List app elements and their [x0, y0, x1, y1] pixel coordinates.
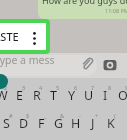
staticText: E [16, 87, 23, 104]
button[interactable]: Y [63, 81, 80, 105]
staticText: K [107, 115, 115, 132]
button[interactable]: S [0, 109, 15, 133]
staticText: ( [114, 112, 116, 119]
staticText: H [71, 115, 81, 132]
button[interactable]: PASTE [0, 23, 46, 50]
staticText: + [95, 112, 99, 119]
staticText: D [19, 115, 29, 132]
button[interactable]: R [28, 81, 45, 105]
button[interactable]: F [33, 109, 50, 133]
button[interactable]: W [0, 81, 10, 105]
staticText: J [91, 115, 95, 132]
staticText: & [60, 112, 65, 119]
staticText: W [0, 87, 8, 104]
staticText: I [103, 87, 108, 104]
staticText: 2 [4, 84, 8, 91]
button[interactable]: K [102, 109, 119, 133]
staticText: 11:08 PM [105, 7, 127, 14]
button[interactable]: H [67, 109, 84, 133]
staticText: How are you guys doing [42, 0, 127, 6]
staticText: _ [44, 112, 47, 119]
staticText: 3 [22, 84, 26, 91]
button[interactable]: How are you guys doing [38, 0, 127, 19]
staticText: U [84, 87, 94, 104]
staticText: Y [68, 87, 76, 104]
button[interactable]: Attach [80, 57, 94, 71]
button[interactable]: I [97, 81, 114, 105]
staticText: G [54, 115, 64, 132]
button[interactable]: U [80, 81, 97, 105]
staticText: 5 [56, 84, 60, 91]
button[interactable]: D [15, 109, 32, 133]
button[interactable] [0, 55, 97, 76]
staticText: S [3, 115, 10, 132]
button[interactable]: T [45, 81, 62, 105]
staticText: R [33, 87, 41, 104]
staticText: 4 [39, 84, 43, 91]
staticText: F [38, 115, 45, 132]
staticText: PASTE [0, 29, 19, 44]
button[interactable]: E [11, 81, 28, 105]
staticText: - [79, 112, 81, 119]
button[interactable]: Camera [103, 58, 117, 72]
button[interactable]: More options [31, 32, 38, 45]
staticText: 9 [125, 84, 127, 91]
button[interactable]: O [114, 81, 127, 105]
button[interactable]: J [84, 109, 101, 133]
button[interactable]: Emoji [0, 74, 8, 89]
button[interactable]: G [50, 109, 67, 133]
staticText: # [9, 112, 13, 119]
staticText: T [50, 87, 57, 104]
staticText: O [118, 87, 127, 104]
staticText: 7 [91, 84, 95, 91]
staticText: 8 [108, 84, 112, 91]
staticText: $ [26, 112, 30, 119]
staticText: Type a mess [0, 53, 55, 67]
staticText: 6 [74, 84, 78, 91]
